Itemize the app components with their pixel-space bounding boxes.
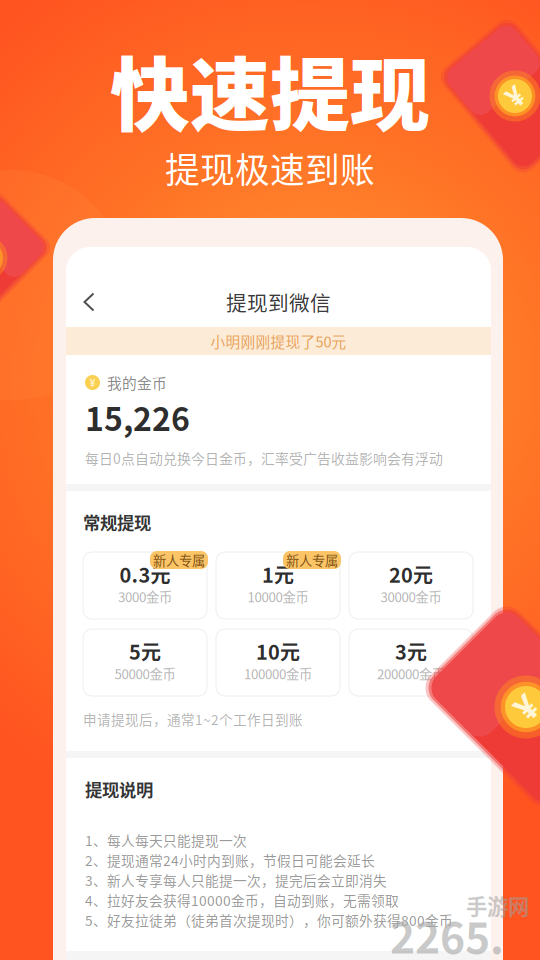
button[interactable]: 10元 [216, 629, 340, 696]
button[interactable]: 1元 [216, 552, 340, 619]
staticText: 4、拉好友会获得10000金币，自动到账，无需领取 [85, 890, 399, 910]
staticText: 2、提现通常24小时内到账，节假日可能会延长 [85, 850, 375, 870]
staticText: 5、好友拉徒弟（徒弟首次提现时），你可额外获得800金币 [85, 910, 453, 930]
staticText: 提现到微信 [226, 287, 331, 317]
staticText: 每日0点自动兑换今日金币，汇率受广告收益影响会有浮动 [85, 448, 443, 468]
button[interactable]: 3元 [349, 629, 473, 696]
staticText: 50000金币 [114, 664, 175, 683]
staticText: ¥ [507, 77, 523, 115]
staticText: 提现极速到账 [165, 143, 375, 193]
staticText: 5元 [129, 636, 161, 665]
staticText: 15,226 [85, 394, 190, 440]
staticText: 30000金币 [380, 587, 441, 606]
staticText: 0.3元 [119, 559, 170, 588]
staticText: 2265.com [390, 904, 504, 960]
staticText: ¥ [89, 375, 95, 390]
staticText: 20元 [389, 559, 433, 588]
staticText: 常规提现 [83, 509, 151, 535]
staticText: 100000金币 [244, 664, 312, 683]
staticText: 快速提现 [110, 31, 430, 147]
staticText: 1元 [262, 559, 294, 588]
staticText: 新人专属 [286, 550, 338, 570]
button[interactable]: 20元 [349, 552, 473, 619]
button[interactable]: Back [69, 282, 109, 322]
staticText: 10元 [256, 636, 300, 665]
staticText: 200000金币 [377, 664, 445, 683]
staticText: 3元 [395, 636, 427, 665]
button[interactable]: 0.3元 [83, 552, 207, 619]
staticText: 提现说明 [85, 776, 153, 802]
button[interactable]: 5元 [83, 629, 207, 696]
staticText: 手游网 [466, 890, 529, 921]
staticText: 1、每人每天只能提现一次 [85, 830, 247, 850]
staticText: 3、新人专享每人只能提一次，提完后会立即消失 [85, 870, 387, 890]
staticText: 新人专属 [153, 550, 205, 570]
staticText: 我的金币 [107, 372, 167, 393]
staticText: 小明刚刚提现了50元 [210, 330, 346, 352]
staticText: 申请提现后，通常1~2个工作日到账 [83, 709, 303, 729]
staticText: 10000金币 [247, 587, 308, 606]
staticText: ¥ [516, 684, 536, 730]
staticText: 3000金币 [118, 587, 172, 606]
